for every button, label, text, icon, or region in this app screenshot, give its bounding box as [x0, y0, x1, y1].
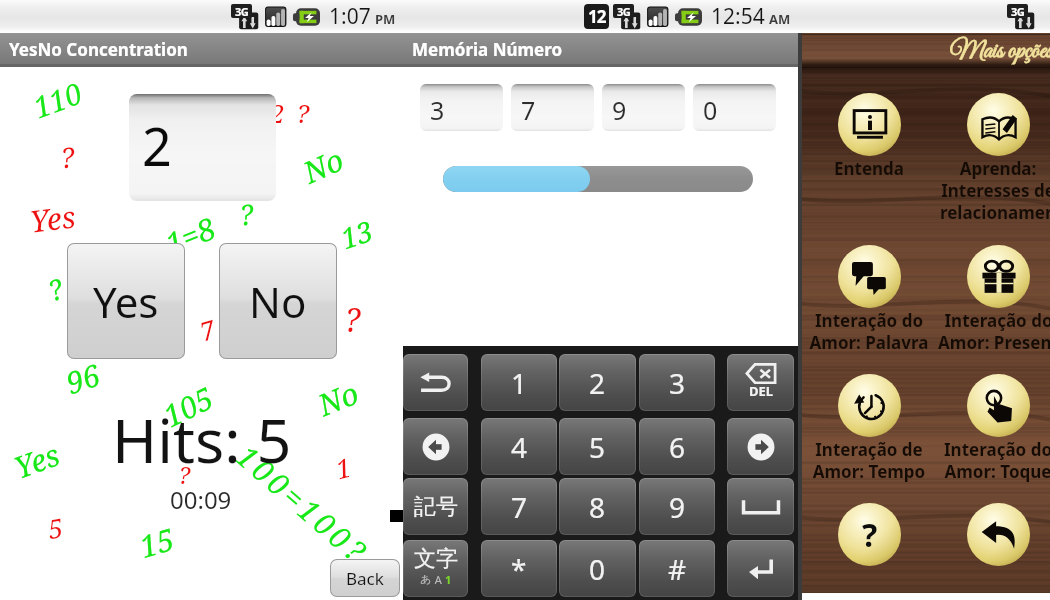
button[interactable]: Yes [68, 244, 184, 358]
staticText: Back [346, 567, 384, 590]
staticText: Interação do Amor: Toque [938, 438, 1050, 483]
button[interactable]: Delete [728, 355, 793, 410]
staticText: 2 [270, 95, 285, 130]
staticText: 13 [336, 211, 378, 257]
staticText: 文字 [414, 545, 458, 573]
button[interactable]: Aprenda: Interesses de relacionamen [938, 93, 1050, 213]
staticText: No [249, 273, 307, 330]
staticText: 8 [589, 488, 606, 526]
staticText: 96 [60, 354, 105, 403]
staticText: 12 [588, 5, 606, 28]
staticText: No [296, 138, 350, 192]
staticText: No [312, 372, 365, 425]
staticText: 0 [589, 550, 606, 588]
button[interactable]: Cursor left [404, 419, 467, 474]
button[interactable]: Interação de Amor: Tempo [809, 374, 929, 494]
staticText: 110 [28, 73, 87, 126]
staticText: Hits: 5 [112, 398, 292, 481]
button[interactable]: 8 [560, 479, 635, 534]
button[interactable]: 2 [129, 94, 276, 201]
staticText: 9 [612, 93, 627, 127]
button[interactable]: Interação do Amor: Toque [938, 374, 1050, 494]
staticText: 5 [589, 428, 606, 466]
staticText: 2 [142, 110, 172, 181]
button[interactable]: Cursor right [728, 419, 793, 474]
button[interactable]: Undo [404, 355, 467, 410]
button[interactable]: 1 [482, 355, 556, 410]
staticText: 12:54 [711, 2, 765, 31]
button[interactable]: 9 [640, 479, 714, 534]
button[interactable]: Entenda [809, 93, 929, 213]
button[interactable]: Interação do Amor: Palavra [809, 245, 929, 365]
staticText: 7 [511, 488, 528, 526]
button[interactable]: 5 [560, 419, 635, 474]
staticText: A [432, 572, 445, 587]
button[interactable]: Help [809, 503, 929, 573]
staticText: 3G [235, 4, 249, 18]
staticText: 100=100? [228, 436, 378, 573]
staticText: Interação do Amor: Present [938, 309, 1050, 354]
staticText: 1 [332, 449, 355, 486]
button[interactable]: 6 [640, 419, 714, 474]
button[interactable]: Interação do Amor: Present [938, 245, 1050, 365]
button[interactable]: 0 [693, 84, 776, 131]
staticText: 4 [511, 428, 528, 466]
staticText: 3G [1011, 4, 1025, 18]
staticText: 3 [669, 364, 686, 402]
button[interactable]: 3 [420, 84, 503, 131]
button[interactable]: 2 [560, 355, 635, 410]
staticText: 6 [669, 428, 686, 466]
staticText: ? [862, 513, 878, 557]
button[interactable]: 4 [482, 419, 556, 474]
button[interactable]: 文字 [404, 541, 467, 596]
button[interactable]: No [220, 244, 336, 358]
staticText: 3G [617, 4, 631, 18]
button[interactable]: 0 [560, 541, 635, 596]
staticText: Mais opções [950, 36, 1050, 67]
button[interactable]: Back [331, 560, 399, 596]
button[interactable]: # [640, 541, 714, 596]
staticText: Interação de Amor: Tempo [809, 438, 929, 483]
staticText: 5 [45, 509, 66, 546]
staticText: あ [420, 572, 432, 586]
staticText: 3 [430, 93, 445, 127]
staticText: PM [375, 10, 396, 28]
button[interactable]: Back [938, 503, 1050, 573]
staticText: 記号 [414, 493, 458, 521]
staticText: YesNo Concentration [9, 38, 188, 61]
staticText: 7 [521, 93, 536, 127]
button[interactable]: 7 [511, 84, 594, 131]
staticText: ? [344, 298, 361, 342]
staticText: * [511, 550, 527, 588]
staticText: AM [769, 10, 791, 28]
button[interactable]: 7 [482, 479, 556, 534]
staticText: Aprenda: Interesses de relacionamen [938, 157, 1050, 224]
button[interactable]: * [482, 541, 556, 596]
staticText: Memória Número [412, 38, 563, 61]
staticText: 1:07 [329, 2, 371, 31]
staticText: Yes [28, 195, 78, 242]
button[interactable]: Space [728, 479, 793, 534]
staticText: Yes [93, 273, 159, 330]
button[interactable]: Enter [728, 541, 793, 596]
staticText: 105 [157, 377, 220, 436]
staticText: 0 [703, 93, 718, 127]
staticText: ? [237, 194, 256, 234]
staticText: DEL [749, 382, 774, 400]
button[interactable]: 9 [602, 84, 685, 131]
staticText: ? [58, 137, 77, 177]
staticText: # [668, 550, 687, 588]
staticText: Entenda [809, 157, 929, 180]
staticText: 1 [445, 572, 452, 587]
staticText: ? [296, 95, 310, 130]
staticText: ? [178, 458, 190, 491]
staticText: 00:09 [170, 483, 232, 516]
staticText: Yes [8, 433, 66, 488]
staticText: 1 [511, 364, 528, 402]
button[interactable]: 3 [640, 355, 714, 410]
staticText: Interação do Amor: Palavra [809, 309, 929, 354]
staticText: 9 [669, 488, 686, 526]
staticText: 7 [195, 311, 220, 348]
button[interactable]: 記号 [404, 479, 467, 534]
staticText: ? [42, 269, 69, 309]
